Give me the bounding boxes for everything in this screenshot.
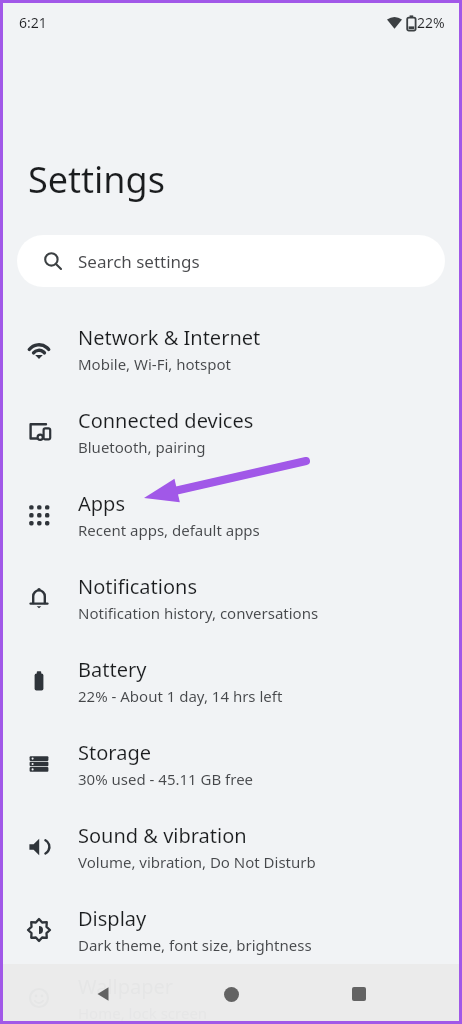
- button[interactable]: Wallpaper: [0, 971, 462, 1024]
- staticText: Notifications: [78, 573, 197, 600]
- staticText: Volume, vibration, Do Not Disturb: [78, 852, 316, 872]
- staticText: Search settings: [78, 250, 200, 273]
- button[interactable]: Battery: [0, 639, 462, 722]
- staticText: 22% - About 1 day, 14 hrs left: [78, 686, 283, 706]
- button[interactable]: Apps: [0, 473, 462, 556]
- button[interactable]: [73, 964, 133, 1024]
- button[interactable]: Network & Internet: [0, 307, 462, 390]
- button[interactable]: [329, 964, 389, 1024]
- button[interactable]: Connected devices: [0, 390, 462, 473]
- staticText: Dark theme, font size, brightness: [78, 935, 312, 955]
- button[interactable]: Storage: [0, 722, 462, 805]
- staticText: 30% used - 45.11 GB free: [78, 769, 254, 789]
- staticText: Network & Internet: [78, 324, 261, 351]
- staticText: Bluetooth, pairing: [78, 437, 206, 457]
- button[interactable]: [201, 964, 261, 1024]
- staticText: Wallpaper: [78, 973, 174, 1000]
- staticText: 6:21: [19, 13, 47, 32]
- button[interactable]: Notifications: [0, 556, 462, 639]
- button[interactable]: Search settings: [17, 235, 445, 287]
- button[interactable]: Display: [0, 888, 462, 971]
- staticText: Apps: [78, 490, 125, 517]
- staticText: Settings: [28, 155, 165, 204]
- staticText: Storage: [78, 739, 151, 766]
- staticText: Battery: [78, 656, 147, 683]
- staticText: Mobile, Wi-Fi, hotspot: [78, 354, 231, 374]
- staticText: Display: [78, 905, 147, 932]
- staticText: Notification history, conversations: [78, 603, 319, 623]
- staticText: Recent apps, default apps: [78, 520, 260, 540]
- button[interactable]: Sound & vibration: [0, 805, 462, 888]
- staticText: Connected devices: [78, 407, 254, 434]
- staticText: Sound & vibration: [78, 822, 247, 849]
- staticText: 22%: [417, 13, 445, 32]
- staticText: Home, lock screen: [78, 1003, 208, 1023]
